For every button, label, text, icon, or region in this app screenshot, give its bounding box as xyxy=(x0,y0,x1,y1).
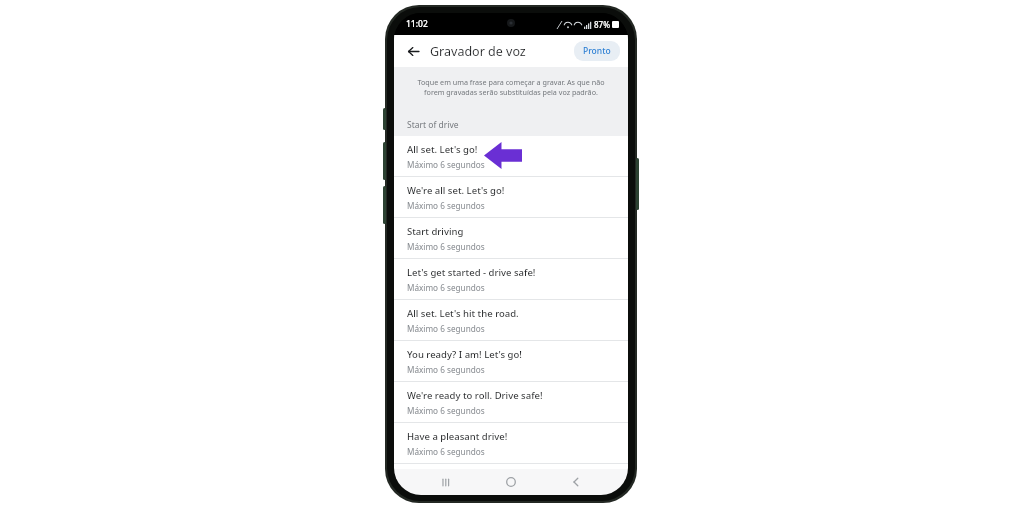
button[interactable]: Back xyxy=(563,469,589,495)
staticText: Have a pleasant drive! xyxy=(407,430,508,443)
staticText: Let's get started - drive safe! xyxy=(407,266,536,279)
staticText: Máximo 6 segundos xyxy=(407,159,485,170)
button[interactable]: We're ready to roll. Drive safe! xyxy=(394,382,628,423)
staticText: Start driving xyxy=(407,225,464,238)
staticText: Máximo 6 segundos xyxy=(407,364,485,375)
staticText: Máximo 6 segundos xyxy=(407,200,485,211)
staticText: All set. Let's hit the road. xyxy=(407,307,519,320)
staticText: We're all set. Let's go! xyxy=(407,184,505,197)
staticText: You ready? I am! Let's go! xyxy=(407,348,522,361)
button[interactable]: Home xyxy=(498,469,524,495)
staticText: All set. Let's go! xyxy=(407,143,478,156)
button[interactable]: Start driving xyxy=(394,218,628,259)
button[interactable]: Have a pleasant drive! xyxy=(394,423,628,463)
staticText: We're ready to roll. Drive safe! xyxy=(407,389,543,402)
staticText: Máximo 6 segundos xyxy=(407,282,485,293)
button[interactable]: Back xyxy=(402,40,424,62)
staticText: 11:02 xyxy=(406,18,428,30)
staticText: Máximo 6 segundos xyxy=(407,241,485,252)
button[interactable]: All set. Let's hit the road. xyxy=(394,300,628,341)
button[interactable]: You ready? I am! Let's go! xyxy=(394,341,628,382)
button[interactable]: Recent apps xyxy=(433,469,459,495)
staticText: Start of drive xyxy=(407,119,459,131)
staticText: Gravador de voz xyxy=(430,43,526,60)
button[interactable]: All set. Let's go! xyxy=(394,136,628,177)
staticText: Máximo 6 segundos xyxy=(407,323,485,334)
staticText: 87% xyxy=(594,19,610,30)
staticText: Máximo 6 segundos xyxy=(407,446,485,457)
button[interactable]: Let's get started - drive safe! xyxy=(394,259,628,300)
staticText: Toque em uma frase para começar a gravar… xyxy=(412,77,610,97)
staticText: Máximo 6 segundos xyxy=(407,405,485,416)
button[interactable]: We're all set. Let's go! xyxy=(394,177,628,218)
staticText: Pronto xyxy=(583,45,611,57)
button[interactable]: Pronto xyxy=(574,41,620,61)
